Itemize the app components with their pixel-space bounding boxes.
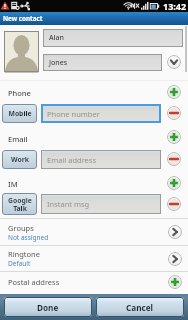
staticText: New contact xyxy=(3,14,43,23)
button[interactable]: Cancel xyxy=(96,297,184,317)
staticText: Google Talk xyxy=(8,196,32,213)
button[interactable]: Google Talk xyxy=(2,193,37,215)
staticText: Ringtone xyxy=(8,249,40,259)
button[interactable]: Work xyxy=(2,150,37,169)
button[interactable]: Add contact photo xyxy=(4,31,39,72)
staticText: Groups xyxy=(8,223,34,233)
button[interactable]: Ringtone xyxy=(0,246,188,271)
staticText: Done xyxy=(37,302,59,313)
button[interactable]: Remove IM xyxy=(167,197,181,211)
staticText: Email address xyxy=(47,155,97,165)
button[interactable]: Groups xyxy=(168,225,182,239)
staticText: Phone xyxy=(8,88,31,98)
staticText: 13:42 xyxy=(163,0,187,12)
button[interactable]: Groups xyxy=(0,219,188,245)
button[interactable]: Remove email xyxy=(167,152,181,166)
staticText: Jones xyxy=(49,58,68,68)
button[interactable]: Remove phone xyxy=(167,106,181,120)
button[interactable]: Add IM xyxy=(167,176,181,190)
staticText: Work xyxy=(11,155,29,164)
staticText: Not assigned xyxy=(8,233,49,242)
button[interactable]: Add postal address xyxy=(168,275,182,289)
button[interactable]: Mobile xyxy=(2,104,37,123)
staticText: Email xyxy=(8,134,28,144)
staticText: Postal address xyxy=(8,277,168,287)
staticText: IM xyxy=(8,179,18,189)
button[interactable]: Ringtone xyxy=(168,252,182,266)
button[interactable]: Email address xyxy=(41,150,161,169)
button[interactable]: Alan xyxy=(43,29,183,47)
staticText: Instant msg xyxy=(47,199,90,209)
button[interactable]: Done xyxy=(4,297,92,317)
button[interactable]: Phone number xyxy=(41,104,161,123)
button[interactable]: Expand name fields xyxy=(167,55,181,69)
button[interactable]: Postal address xyxy=(0,272,188,292)
staticText: Phone number xyxy=(47,109,100,119)
button[interactable]: Instant msg xyxy=(41,194,161,214)
staticText: Cancel xyxy=(126,302,154,313)
staticText: Default xyxy=(8,259,31,268)
button[interactable]: Add phone xyxy=(167,85,181,99)
button[interactable]: Add email xyxy=(167,130,181,144)
button[interactable]: Jones xyxy=(43,54,162,71)
staticText: Alan xyxy=(49,33,64,43)
staticText: Mobile xyxy=(8,109,32,118)
